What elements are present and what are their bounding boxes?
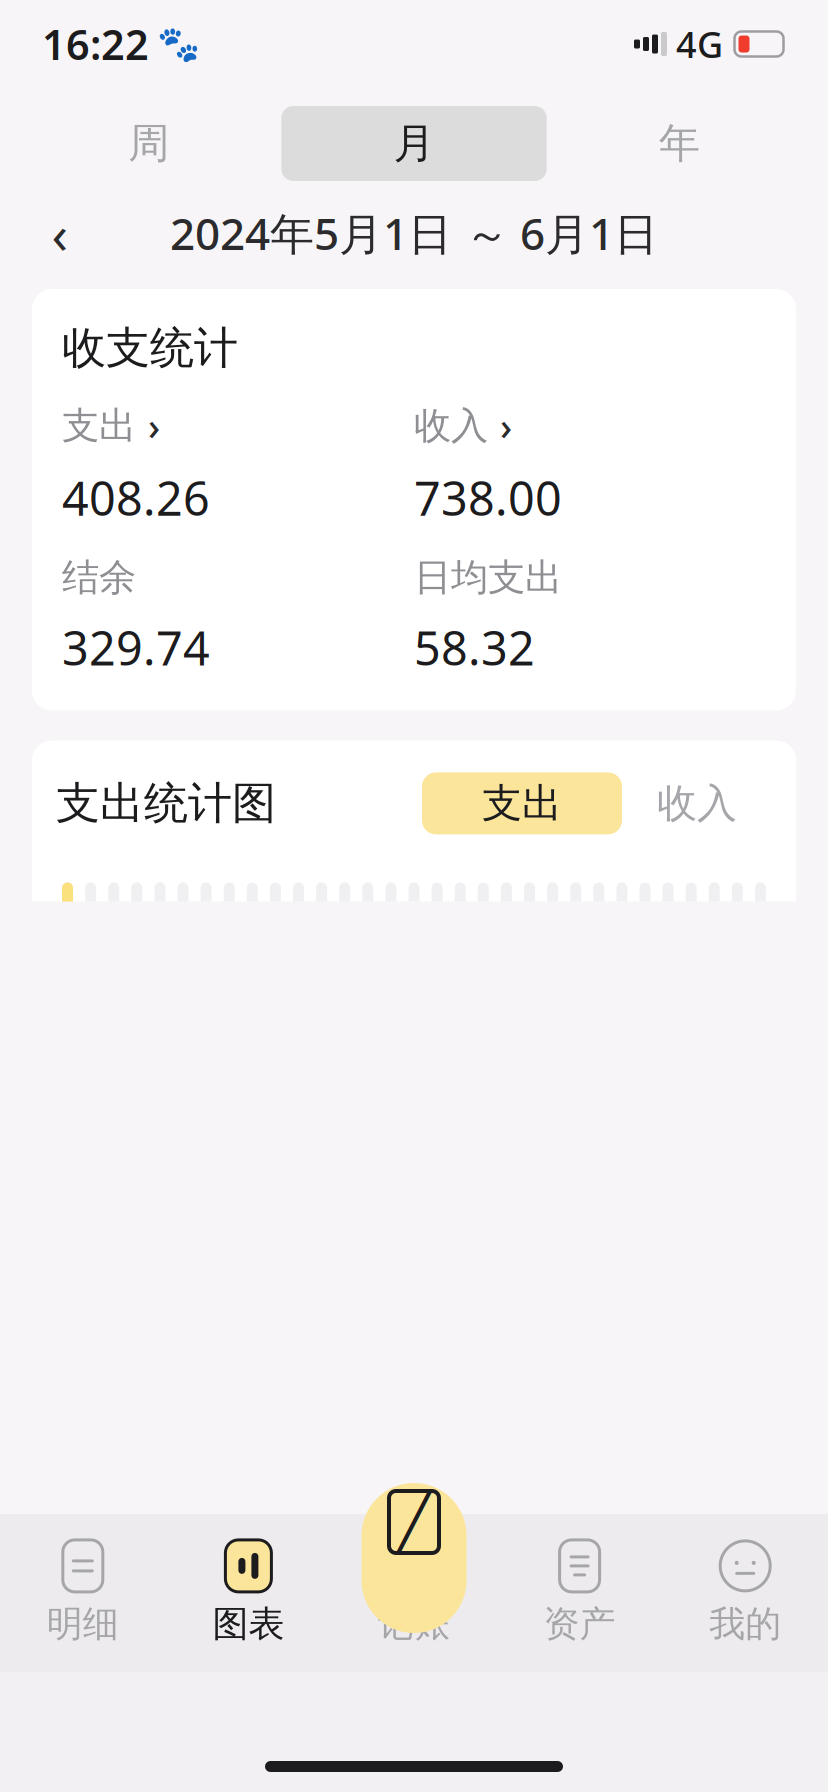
staticText: 购物 <box>554 1522 618 1561</box>
staticText: 我的 <box>709 1602 781 1646</box>
staticText: 收支统计 <box>62 321 238 375</box>
staticText: 4G <box>676 20 723 68</box>
staticText: 收入 <box>657 779 737 828</box>
staticText: 🐾 <box>157 24 200 64</box>
button[interactable]: 资产 <box>497 1514 662 1672</box>
button[interactable]: 支出 <box>422 772 622 834</box>
staticText: 支出 <box>62 403 136 449</box>
staticText: 支出 <box>482 779 562 828</box>
staticText: 日用品 <box>567 1587 663 1626</box>
button[interactable]: 记账 <box>361 1483 466 1633</box>
staticText: 饮品 <box>210 1509 274 1548</box>
staticText: 支出统计图 <box>56 776 276 830</box>
button[interactable]: 周 <box>16 106 281 181</box>
staticText: 738.00 <box>414 467 562 529</box>
staticText: 蔬菜 <box>62 1587 126 1626</box>
staticText: 服饰 <box>382 1509 446 1548</box>
button[interactable]: 支出 <box>62 401 414 451</box>
staticText: 日均支出 <box>414 555 562 600</box>
button[interactable]: 我的 <box>662 1514 828 1672</box>
staticText: 58.32 <box>414 616 535 678</box>
staticText: 6.77% <box>341 1583 439 1629</box>
button[interactable]: 明细 <box>0 1514 166 1672</box>
staticText: 408.26 <box>62 467 210 529</box>
staticText: 月 <box>393 118 434 169</box>
staticText: 年 <box>659 118 700 169</box>
staticText: 资产 <box>544 1602 616 1646</box>
staticText: 结余 <box>62 555 136 600</box>
button[interactable]: 收入 <box>414 401 766 451</box>
button[interactable]: 记账 <box>331 1514 497 1672</box>
button[interactable]: 图表 <box>166 1514 331 1672</box>
staticText: 图表 <box>212 1602 284 1646</box>
staticText: 明细 <box>47 1602 119 1646</box>
staticText: 16:22 <box>42 17 149 71</box>
staticText: › <box>148 401 160 451</box>
staticText: 记账 <box>378 1602 450 1646</box>
button[interactable]: 年 <box>547 106 812 181</box>
staticText: ╱ <box>398 1492 430 1552</box>
staticText: 2024年5月1日 ～ 6月1日 <box>170 204 658 262</box>
staticText: › <box>500 401 512 451</box>
staticText: 7.30% <box>140 1583 238 1629</box>
staticText: 周 <box>128 118 169 169</box>
button[interactable]: 月 <box>281 106 547 181</box>
staticText: 6.12% <box>469 1583 567 1629</box>
staticText: 329.74 <box>62 616 210 678</box>
button[interactable]: 收入 <box>622 772 772 834</box>
staticText: 收入 <box>414 403 488 449</box>
button[interactable]: 上一个月 <box>30 203 90 263</box>
staticText: ‹ <box>51 198 68 268</box>
